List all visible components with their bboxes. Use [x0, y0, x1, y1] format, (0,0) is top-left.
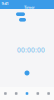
button[interactable]: Tab 1	[0, 87, 11, 100]
button[interactable]: Tab 4	[32, 87, 43, 100]
staticText: Timer	[24, 5, 35, 10]
button[interactable]: Tab 3	[22, 87, 32, 100]
staticText: 00:00:00	[17, 45, 45, 54]
button[interactable]: Tab 5	[43, 87, 54, 100]
staticText: 9:41	[1, 1, 8, 6]
button[interactable]: Tab 2	[11, 87, 22, 100]
button[interactable]: Start	[24, 70, 29, 75]
